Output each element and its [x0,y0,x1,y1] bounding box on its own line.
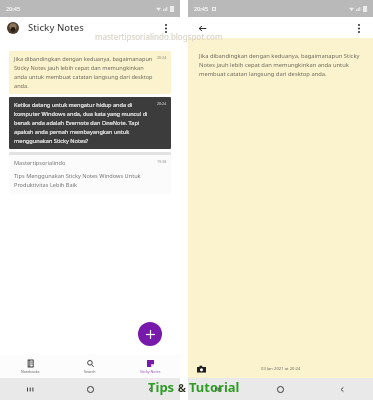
button[interactable]: Add image [196,364,207,375]
button[interactable]: Sticky Notes [120,354,180,378]
staticText: Sticky Notes [28,21,84,34]
button[interactable]: Notebooks [0,354,60,378]
button[interactable]: Back [311,378,373,400]
button[interactable]: Jika dibandingkan dengan keduanya, bagai… [9,51,171,94]
staticText: Tips [148,378,175,396]
staticText: Tips Menggunakan Sticky Notes Windows Un… [14,172,167,188]
button[interactable]: More options [352,21,366,35]
button[interactable]: More options [159,21,173,35]
staticText: Tutorial [189,378,240,396]
button[interactable]: Home [249,378,311,400]
staticText: Jika dibandingkan dengan keduanya, bagai… [199,52,362,78]
staticText: 20:45 [6,5,21,12]
button[interactable]: Recents [0,378,60,400]
staticText: Mastertipsorialindo [14,159,157,167]
staticText: 20:24 [157,101,167,106]
staticText: Sticky Notes [140,369,161,374]
staticText: 20:45 [194,5,209,12]
button[interactable]: Recents [188,378,249,400]
button[interactable]: Add note [138,322,162,346]
staticText: 19:38 [157,159,167,164]
staticText: Ketika datang untuk mengatur hidup anda … [14,101,153,144]
button[interactable]: Ketika datang untuk mengatur hidup anda … [9,97,171,149]
button[interactable]: Search [60,354,120,378]
button[interactable]: Home [60,378,120,400]
button[interactable]: Account [7,22,19,34]
staticText: & [175,380,189,395]
staticText: 20:24 [157,55,167,60]
button[interactable]: Back [120,378,180,400]
staticText: Notebooks [21,369,40,374]
staticText: mastertipsorialindo.blogspot.com [95,31,223,42]
staticText: 03 Jan 2021 at 20:24 [261,366,301,372]
staticText: Search [84,369,96,374]
staticText: Jika dibandingkan dengan keduanya, bagai… [14,55,153,89]
button[interactable]: Back [195,21,209,35]
button[interactable]: Mastertipsorialindo [9,152,171,194]
